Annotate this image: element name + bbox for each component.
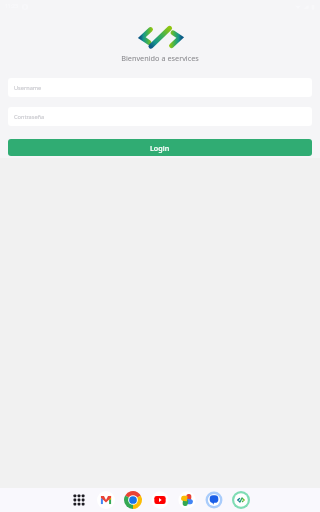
button[interactable]: Chrome [124,491,142,509]
button[interactable]: Contraseña [8,107,312,126]
staticText: Username [14,84,42,92]
staticText: Login [150,143,170,153]
button[interactable]: Messages [205,491,223,509]
button[interactable]: Google Photos [178,491,196,509]
staticText: Bienvenido a eservices [121,53,199,63]
button[interactable]: Username [8,78,312,97]
button[interactable]: Login [8,139,312,156]
button[interactable]: All apps [70,491,88,509]
button[interactable]: YouTube [151,491,169,509]
staticText: Contraseña [14,113,45,121]
button[interactable]: eservices [232,491,250,509]
button[interactable]: Gmail [97,491,115,509]
